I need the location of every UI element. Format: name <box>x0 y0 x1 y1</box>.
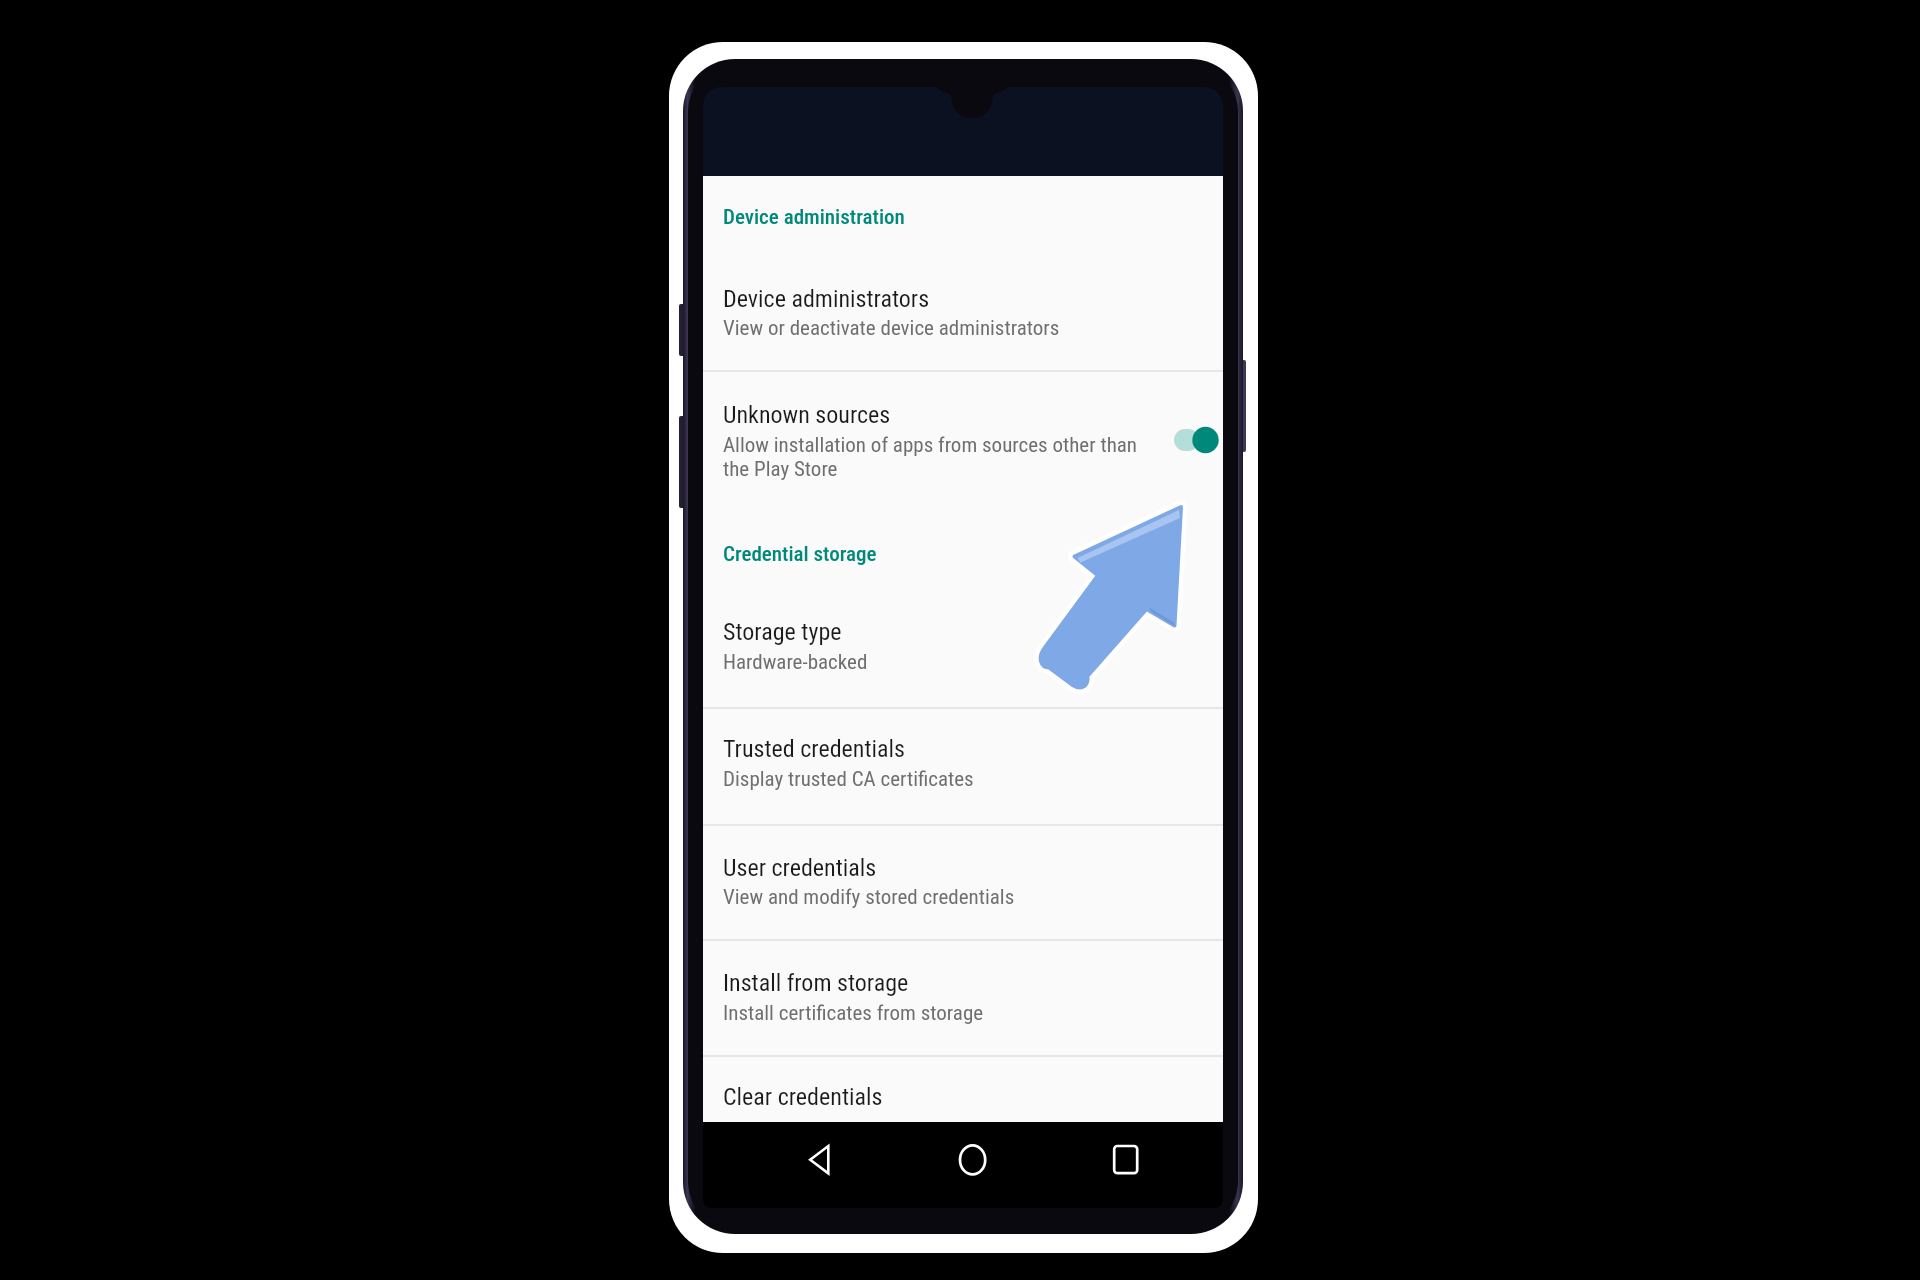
staticText: Unknown sources <box>723 401 891 429</box>
button[interactable]: Credential storage <box>703 527 1223 575</box>
staticText: Device administration <box>723 205 905 230</box>
button[interactable]: Unknown sources <box>703 386 1223 488</box>
staticText: Device administrators <box>723 285 930 313</box>
staticText: Storage type <box>723 618 842 646</box>
button[interactable]: Trusted credentials <box>703 721 1223 821</box>
button[interactable]: User credentials <box>703 838 1223 937</box>
staticText: User credentials <box>723 854 877 882</box>
button[interactable]: Recent apps <box>1099 1134 1151 1186</box>
staticText: View or deactivate device administrators <box>723 316 1060 341</box>
button[interactable]: Device administrators <box>703 272 1223 370</box>
button[interactable]: Back <box>795 1134 847 1186</box>
staticText: the Play Store <box>723 457 838 482</box>
button[interactable]: Home <box>946 1134 998 1186</box>
staticText: Hardware-backed <box>723 650 868 675</box>
staticText: Install from storage <box>723 969 909 997</box>
staticText: View and modify stored credentials <box>723 885 1015 910</box>
button[interactable]: Unknown sources toggle <box>1170 424 1222 456</box>
button[interactable]: Device administration <box>703 189 1223 237</box>
staticText: Display trusted CA certificates <box>723 767 974 792</box>
staticText: Credential storage <box>723 542 877 567</box>
staticText: Clear credentials <box>723 1083 883 1111</box>
button[interactable]: Clear credentials <box>703 1070 1223 1121</box>
staticText: Trusted credentials <box>723 735 906 763</box>
other: Pointer <box>1030 495 1195 700</box>
staticText: Allow installation of apps from sources … <box>723 433 1138 458</box>
staticText: Install certificates from storage <box>723 1001 984 1026</box>
button[interactable]: Install from storage <box>703 953 1223 1052</box>
button[interactable]: Storage type <box>703 605 1223 705</box>
